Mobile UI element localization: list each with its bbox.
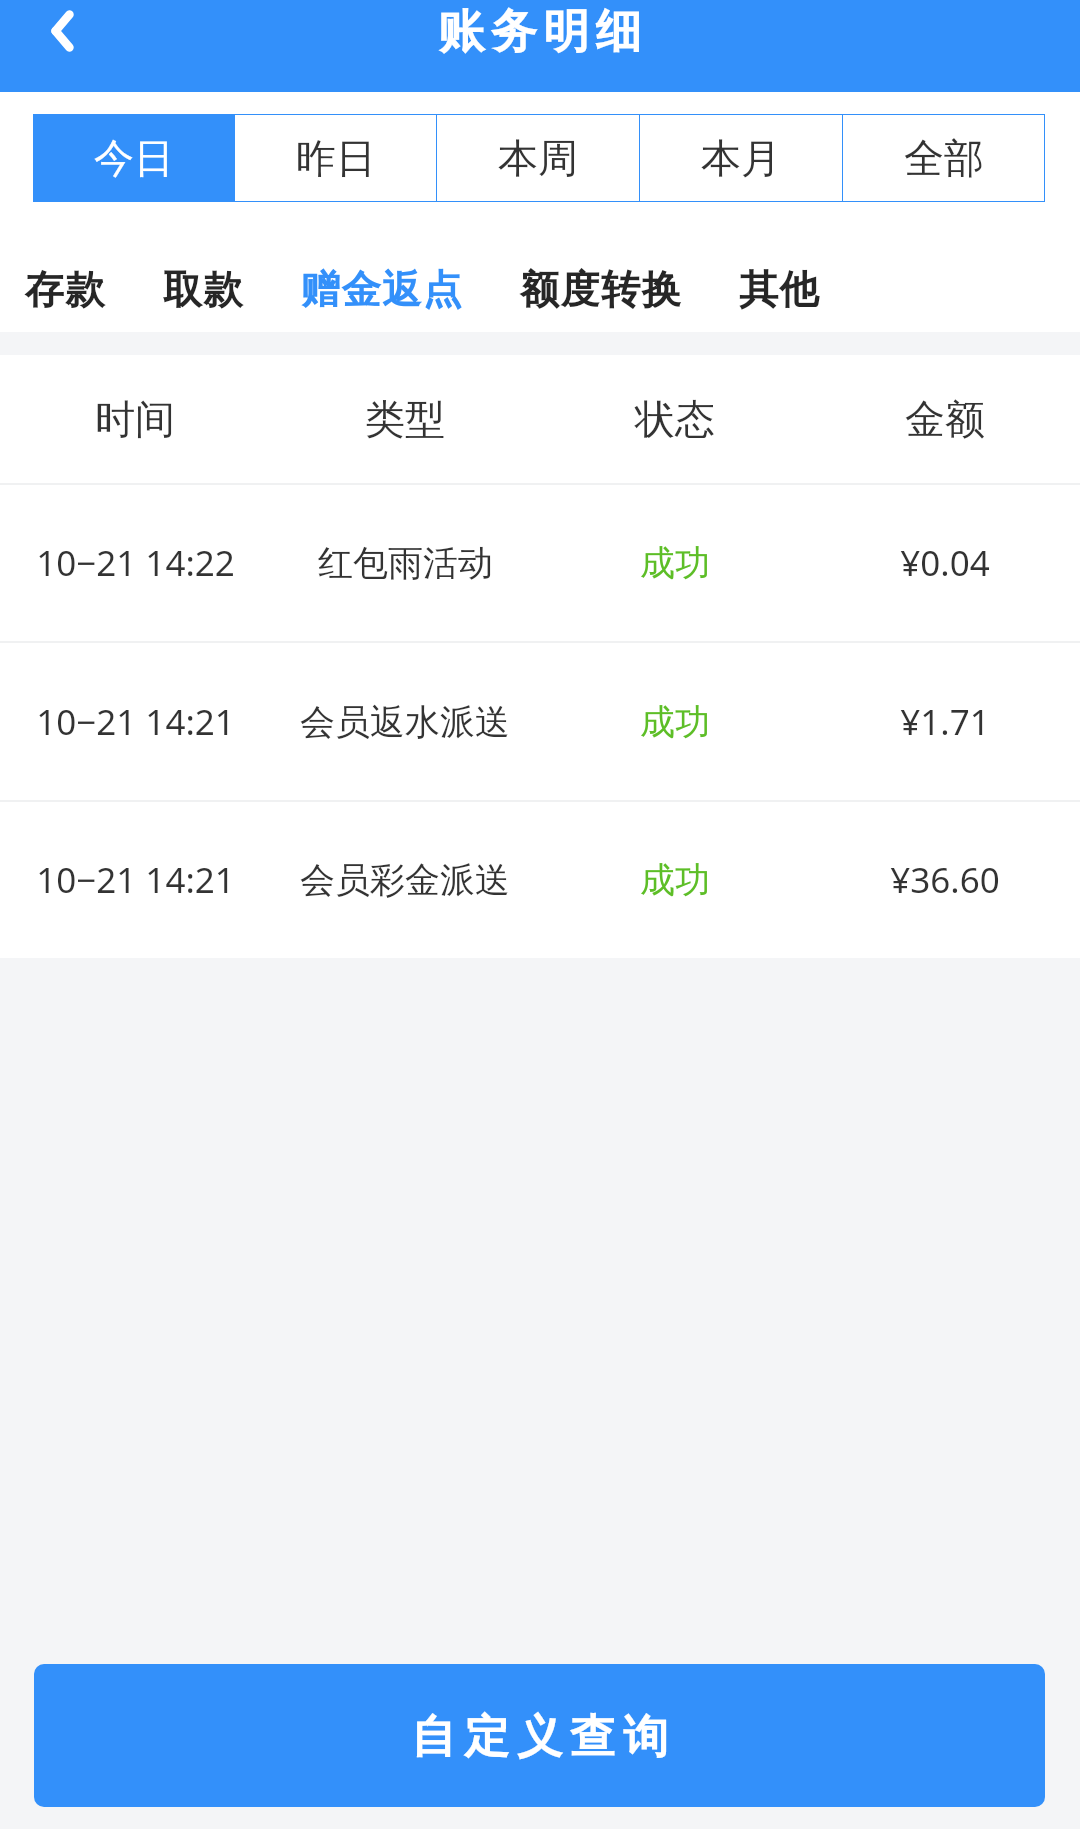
staticText: 账务明细 <box>435 3 645 61</box>
button[interactable]: 赠金返点 <box>287 255 478 324</box>
button[interactable]: 自定义查询 <box>34 1664 1045 1807</box>
staticText: 额度转换 <box>520 265 683 314</box>
staticText: 成功 <box>640 858 710 902</box>
button[interactable]: 今日 <box>33 114 234 202</box>
staticText: 10−21 14:21 <box>36 698 235 746</box>
staticText: 存款 <box>25 265 107 314</box>
staticText: 红包雨活动 <box>318 541 493 585</box>
staticText: 会员彩金派送 <box>300 858 510 902</box>
button[interactable]: 时间 <box>0 355 1080 483</box>
staticText: 时间 <box>95 394 175 444</box>
button[interactable]: 全部 <box>843 114 1045 202</box>
button[interactable]: 存款 <box>11 255 121 324</box>
button[interactable]: Back <box>20 0 96 62</box>
staticText: 10−21 14:21 <box>36 856 235 904</box>
staticText: 成功 <box>640 541 710 585</box>
staticText: 自定义查询 <box>407 1709 672 1766</box>
staticText: 本月 <box>701 133 781 183</box>
staticText: 类型 <box>365 394 445 444</box>
staticText: ¥36.60 <box>890 856 1000 904</box>
button[interactable]: 10−21 14:21 <box>0 643 1080 800</box>
button[interactable]: 其他 <box>725 255 835 324</box>
staticText: 成功 <box>640 700 710 744</box>
button[interactable]: 10−21 14:21 <box>0 802 1080 958</box>
button[interactable]: 10−21 14:22 <box>0 485 1080 641</box>
staticText: ¥1.71 <box>900 698 990 746</box>
staticText: 取款 <box>163 265 245 314</box>
staticText: 昨日 <box>296 133 376 183</box>
staticText: 全部 <box>904 133 984 183</box>
button[interactable]: 本月 <box>640 114 842 202</box>
staticText: 其他 <box>739 265 821 314</box>
button[interactable]: 昨日 <box>235 114 436 202</box>
button[interactable]: 取款 <box>149 255 259 324</box>
button[interactable]: 额度转换 <box>506 255 697 324</box>
staticText: 今日 <box>94 133 174 183</box>
staticText: 金额 <box>905 394 985 444</box>
button[interactable]: 本周 <box>437 114 639 202</box>
staticText: 10−21 14:22 <box>36 539 235 587</box>
staticText: ¥0.04 <box>900 539 990 587</box>
staticText: 会员返水派送 <box>300 700 510 744</box>
staticText: 赠金返点 <box>301 265 464 314</box>
staticText: 状态 <box>635 394 715 444</box>
staticText: 本周 <box>498 133 578 183</box>
